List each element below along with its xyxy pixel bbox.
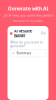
staticText: Generate with AI	[8, 5, 48, 12]
staticText: Pro	[41, 32, 46, 35]
staticText: Summary	[16, 51, 31, 55]
staticText: What do you want to generate?	[10, 40, 43, 48]
staticText: Let AI help you write the perfect	[2, 14, 53, 18]
staticText: AI Resume Builder	[14, 29, 32, 38]
staticText: resume in minutes	[13, 19, 43, 23]
